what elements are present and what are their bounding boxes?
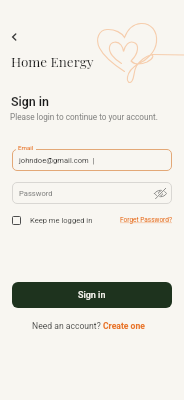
staticText: Email xyxy=(18,144,34,151)
staticText: Please login to continue to your account… xyxy=(10,112,158,122)
staticText: Sign in xyxy=(78,290,106,301)
button[interactable]: Password xyxy=(12,182,172,204)
staticText: Forget Password? xyxy=(120,216,172,224)
button[interactable]: Create one xyxy=(103,321,145,331)
button[interactable]: Back xyxy=(4,27,23,46)
staticText: Sign in xyxy=(11,94,49,109)
staticText: Create one xyxy=(103,321,145,331)
button[interactable]: Show password xyxy=(153,186,167,200)
staticText: Password xyxy=(19,189,153,198)
button[interactable]: Forget Password? xyxy=(120,216,172,224)
staticText: Home Energy xyxy=(11,52,94,70)
staticText: johndoe@gmail.com | xyxy=(19,156,95,165)
button[interactable]: johndoe@gmail.com | xyxy=(12,149,172,171)
staticText: Keep me logged in xyxy=(30,216,93,225)
button[interactable]: Keep me logged in xyxy=(12,216,93,225)
staticText: Need an account? xyxy=(32,321,103,331)
button[interactable]: Sign in xyxy=(12,282,172,308)
